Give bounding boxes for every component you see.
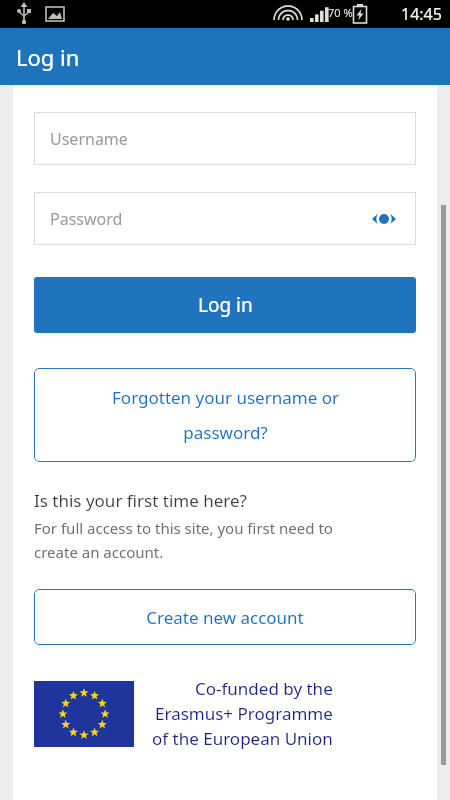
staticText: create an account.	[34, 542, 164, 562]
button[interactable]: Password	[34, 192, 416, 245]
staticText: 70 %	[328, 5, 353, 20]
button[interactable]: Username	[34, 112, 416, 165]
staticText: Log in	[16, 42, 80, 72]
button[interactable]: Show password	[368, 203, 400, 235]
staticText: password?	[183, 421, 268, 444]
button[interactable]: Create new account	[34, 589, 416, 645]
staticText: Is this your first time here?	[34, 489, 247, 512]
staticText: Log in	[198, 292, 253, 318]
staticText: of the European Union	[152, 727, 333, 750]
staticText: Password	[50, 208, 368, 230]
staticText: 14:45	[401, 3, 442, 25]
staticText: Create new account	[146, 606, 304, 629]
button[interactable]: Forgotten your username or	[34, 368, 416, 462]
staticText: Username	[50, 128, 400, 150]
staticText: Co-funded by the	[195, 677, 333, 700]
button[interactable]: Log in	[34, 277, 416, 333]
staticText: Forgotten your username or	[112, 386, 339, 409]
staticText: For full access to this site, you first …	[34, 518, 333, 538]
staticText: Erasmus+ Programme	[155, 702, 333, 725]
